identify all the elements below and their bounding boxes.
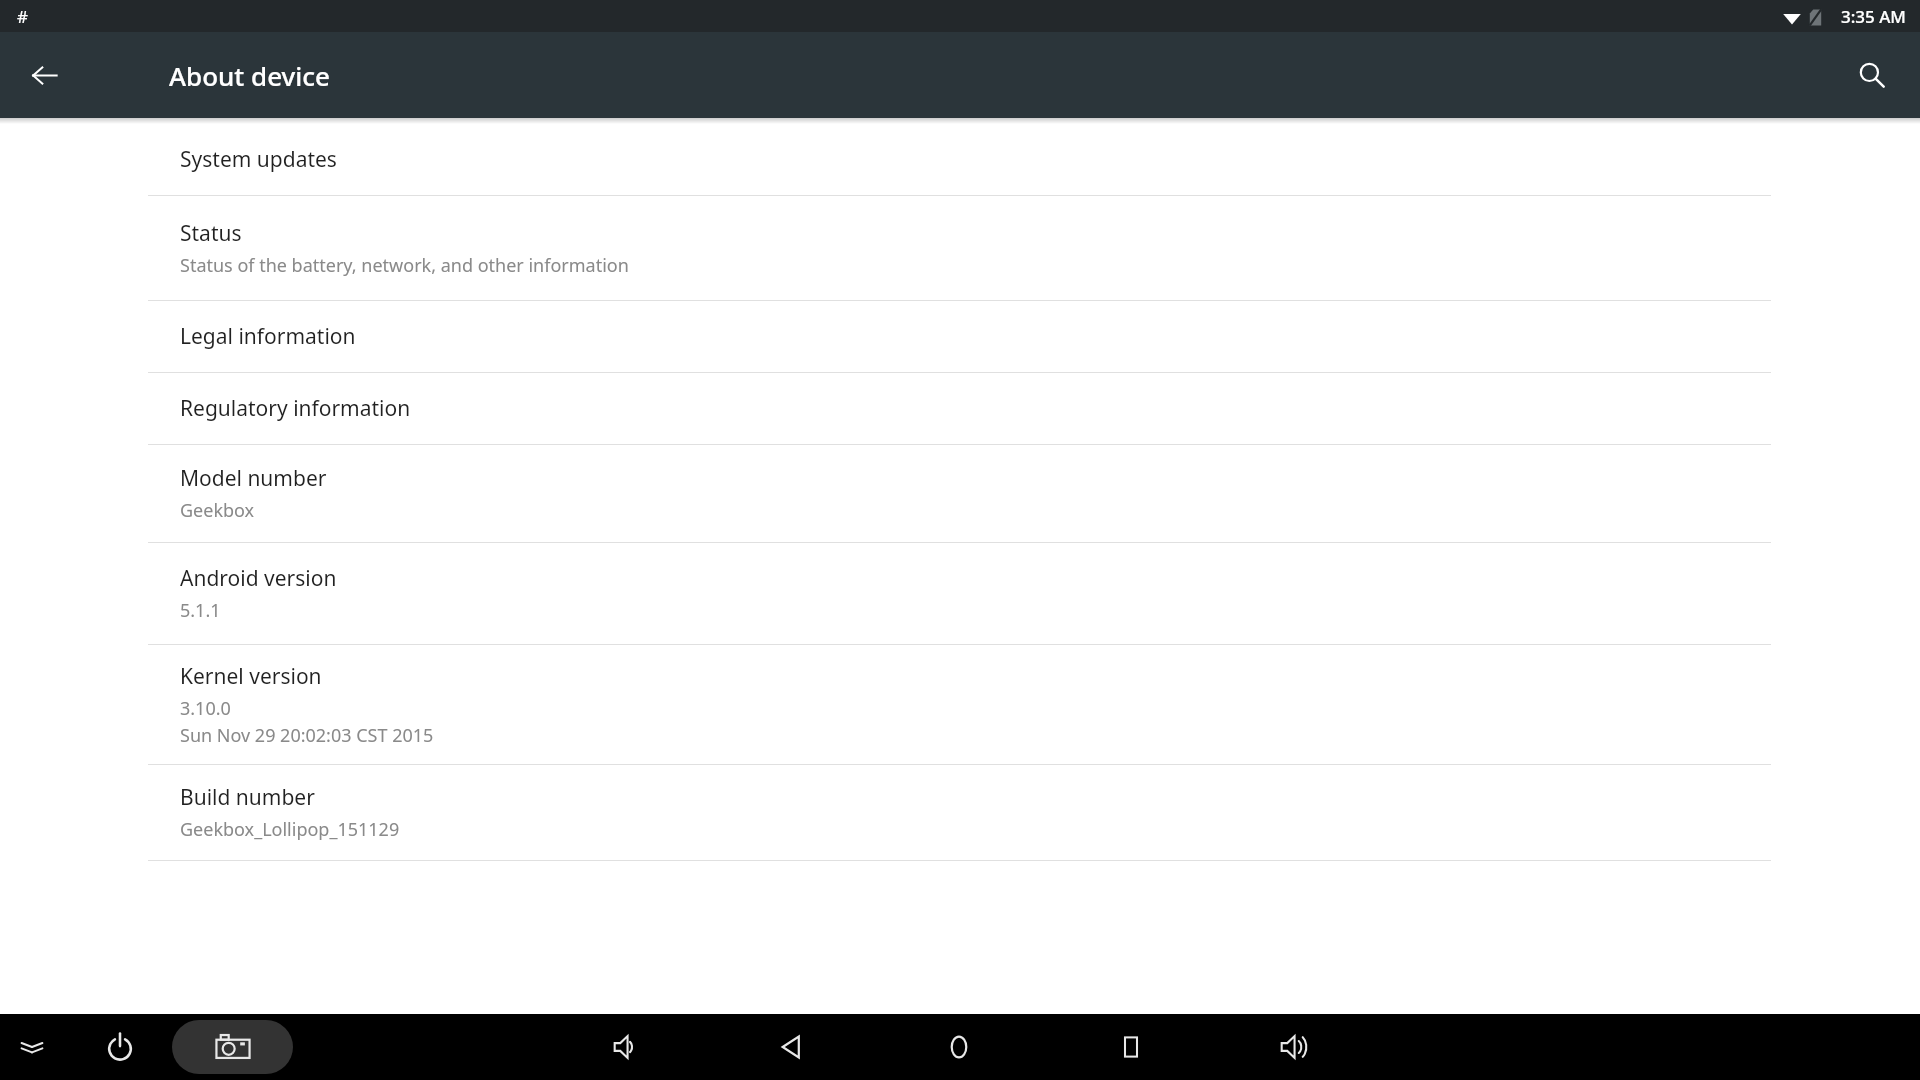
staticText: Geekbox [180,498,255,523]
button[interactable]: Model number [0,445,1920,542]
button[interactable]: System updates [0,124,1920,195]
staticText: 3.10.0 [180,696,231,721]
button[interactable]: Android version [0,543,1920,644]
button[interactable]: Volume down [601,1021,653,1073]
staticText: Sun Nov 29 20:02:03 CST 2015 [180,723,434,748]
button[interactable]: Back [765,1021,817,1073]
staticText: Legal information [180,322,356,351]
staticText: Regulatory information [180,394,411,423]
staticText: Android version [180,564,337,593]
staticText: Build number [180,783,315,812]
button[interactable]: Status [0,196,1920,300]
staticText: System updates [180,145,337,174]
button[interactable]: Kernel version [0,645,1920,764]
staticText: 5.1.1 [180,598,221,623]
button[interactable]: Search [1844,47,1900,103]
button[interactable]: Screenshot [172,1020,293,1074]
button[interactable]: Hide navigation bar [6,1021,58,1073]
staticText: Kernel version [180,662,322,691]
staticText: About device [169,58,330,93]
button[interactable]: Build number [0,765,1920,860]
button[interactable]: Recent apps [1105,1021,1157,1073]
staticText: Status of the battery, network, and othe… [180,253,629,278]
button[interactable]: Power [94,1021,146,1073]
staticText: # [17,5,28,28]
button[interactable]: Legal information [0,301,1920,372]
button[interactable]: Home [933,1021,985,1073]
button[interactable]: Regulatory information [0,373,1920,444]
staticText: 3:35 AM [1841,5,1906,28]
button[interactable]: Volume up [1268,1021,1320,1073]
staticText: Status [180,219,242,248]
staticText: Model number [180,464,327,493]
staticText: Geekbox_Lollipop_151129 [180,817,400,842]
button[interactable]: Back [18,49,70,101]
